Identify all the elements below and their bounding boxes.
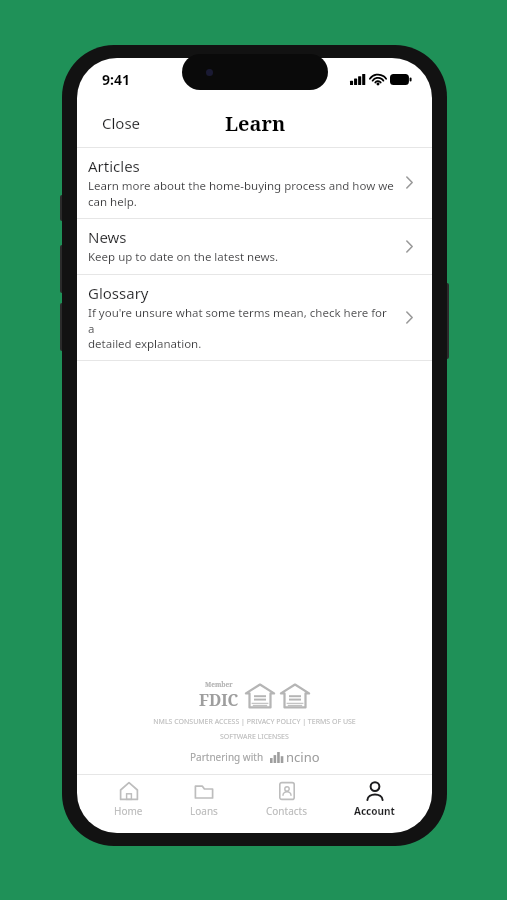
staticText: If you're unsure what some terms mean, c… (88, 305, 396, 351)
staticText: Articles (88, 156, 140, 176)
staticText: Learn (225, 110, 286, 137)
staticText: Partnering with (190, 750, 264, 764)
staticText: Close (102, 113, 141, 133)
staticText: Account (354, 804, 395, 818)
staticText: Keep up to date on the latest news. (88, 249, 279, 265)
staticText: SOFTWARE LICENSES (220, 732, 289, 742)
staticText: Member (205, 680, 233, 689)
button[interactable]: Loans (180, 778, 228, 821)
staticText: NMLS CONSUMER ACCESS | PRIVACY POLICY | … (153, 717, 356, 727)
staticText: Home (114, 804, 143, 818)
staticText: Learn more about the home-buying process… (88, 178, 394, 209)
button[interactable]: Close (77, 105, 166, 141)
staticText: Contacts (266, 804, 307, 818)
button[interactable]: Glossary (77, 275, 432, 360)
staticText: ncino (286, 748, 320, 766)
button[interactable]: Articles (77, 148, 432, 218)
staticText: News (88, 227, 127, 247)
button[interactable]: Home (104, 778, 153, 821)
staticText: 9:41 (102, 70, 130, 89)
staticText: Loans (190, 804, 218, 818)
staticText: FDIC (199, 689, 239, 711)
staticText: Glossary (88, 283, 149, 303)
button[interactable]: Account (344, 778, 405, 821)
button[interactable]: Contacts (256, 778, 317, 821)
button[interactable]: News (77, 219, 432, 274)
